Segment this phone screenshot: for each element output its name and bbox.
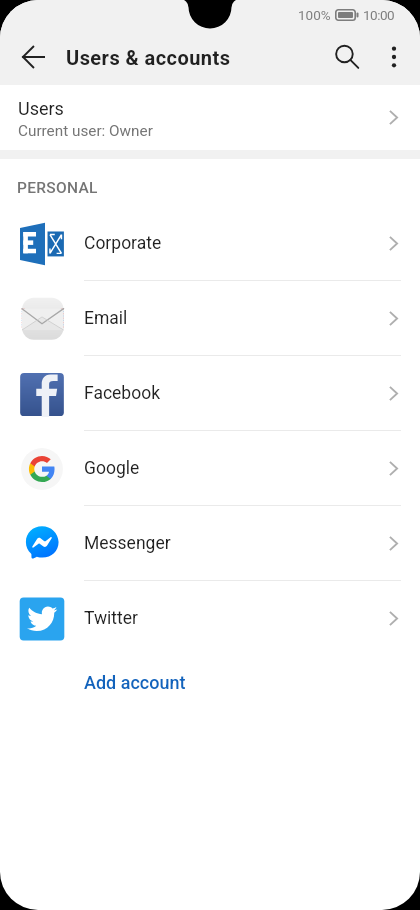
button[interactable]: Twitter <box>0 581 420 656</box>
staticText: Corporate <box>84 233 162 254</box>
button[interactable]: Google <box>0 431 420 506</box>
staticText: Email <box>84 308 128 329</box>
staticText: Add account <box>84 672 186 693</box>
staticText: PERSONAL <box>17 179 98 197</box>
staticText: Current user: Owner <box>18 122 153 140</box>
button[interactable]: Users <box>0 85 420 150</box>
staticText: Twitter <box>84 608 139 629</box>
staticText: 100% <box>298 7 331 23</box>
button[interactable]: Messenger <box>0 506 420 581</box>
button[interactable]: Facebook <box>0 356 420 431</box>
button[interactable]: Add account <box>0 656 420 714</box>
button[interactable]: Email <box>0 281 420 356</box>
button[interactable]: More options <box>370 33 418 81</box>
button[interactable]: Corporate <box>0 206 420 281</box>
button[interactable]: Search <box>322 33 370 81</box>
staticText: Messenger <box>84 533 171 554</box>
staticText: Google <box>84 458 140 479</box>
staticText: Users & accounts <box>66 46 231 69</box>
button[interactable]: Back <box>10 33 58 81</box>
staticText: Users <box>18 98 64 119</box>
staticText: 10:00 <box>363 7 395 23</box>
staticText: Facebook <box>84 383 160 404</box>
